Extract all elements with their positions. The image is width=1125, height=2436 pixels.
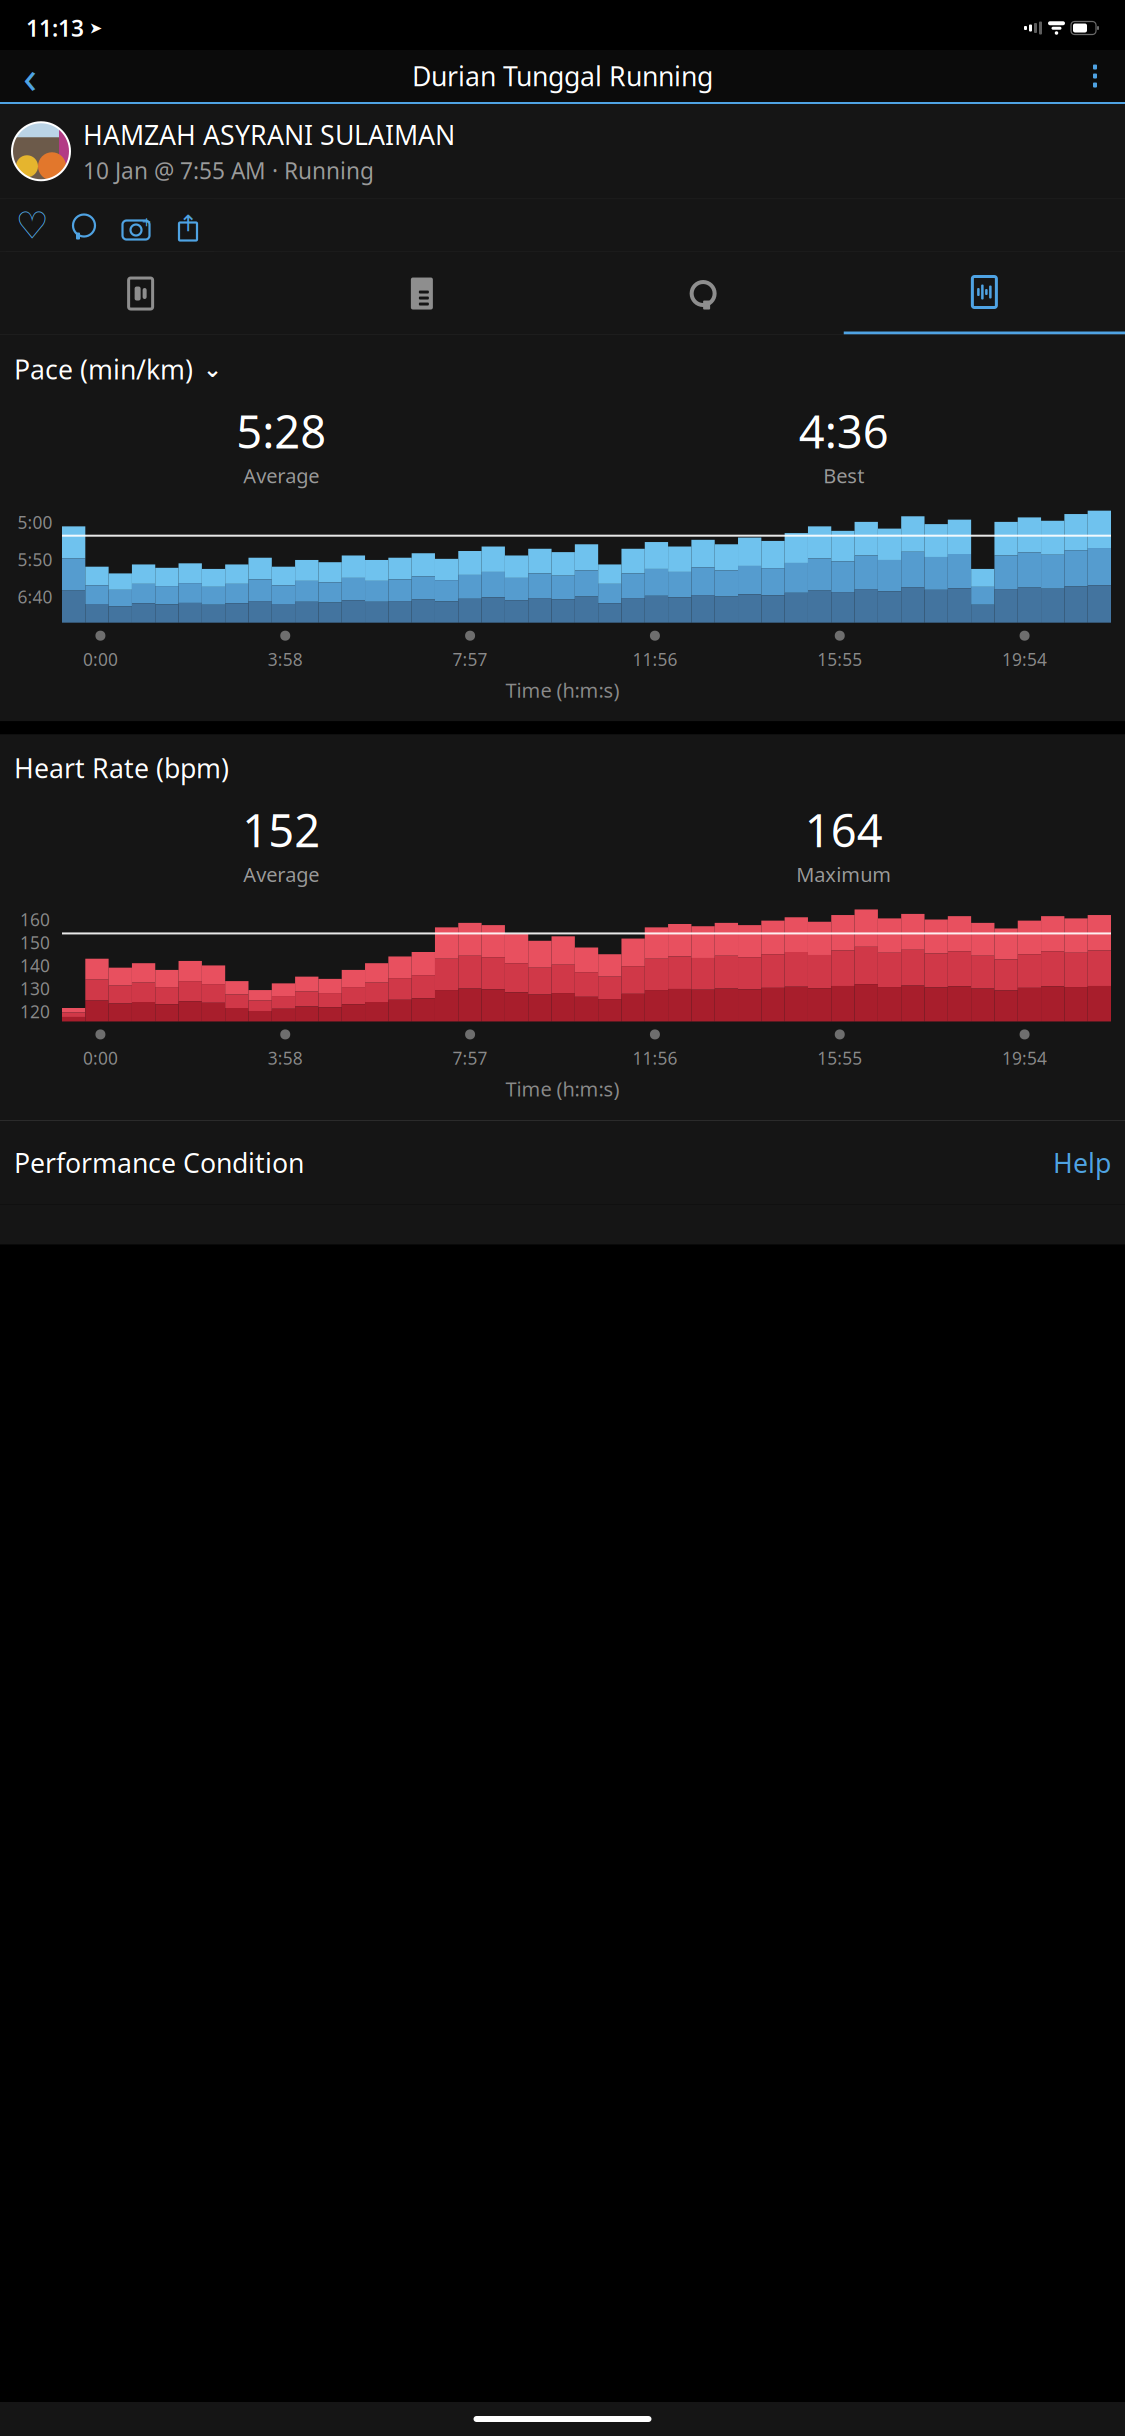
- staticText: 0:00: [83, 1046, 118, 1069]
- staticText: 5:00: [17, 511, 52, 534]
- button[interactable]: Map: [0, 252, 281, 334]
- staticText: Maximum: [796, 861, 891, 887]
- button[interactable]: Pace (min/km): [0, 335, 1125, 387]
- staticText: 150: [20, 931, 50, 954]
- staticText: 15:55: [817, 1046, 862, 1069]
- staticText: 0:00: [83, 648, 118, 671]
- button[interactable]: Back: [4, 52, 56, 100]
- button[interactable]: Charts: [844, 252, 1125, 334]
- staticText: 11:56: [632, 648, 677, 671]
- staticText: 6:40: [17, 585, 52, 608]
- staticText: Average: [243, 462, 319, 489]
- staticText: 152: [242, 800, 320, 860]
- button[interactable]: Add photo: [110, 199, 162, 251]
- button[interactable]: Performance Condition: [0, 1121, 1125, 1204]
- staticText: 140: [20, 954, 50, 977]
- staticText: +: [142, 211, 151, 233]
- staticText: HAMZAH ASYRANI SULAIMAN: [83, 117, 455, 152]
- staticText: 19:54: [1002, 648, 1047, 671]
- staticText: ↑: [178, 210, 197, 236]
- staticText: 5:50: [17, 548, 52, 571]
- staticText: 120: [20, 1000, 50, 1023]
- staticText: 160: [20, 908, 50, 931]
- staticText: ➤: [89, 19, 102, 37]
- staticText: 10 Jan @ 7:55 AM · Running: [83, 155, 374, 185]
- button[interactable]: Share: [162, 199, 214, 251]
- staticText: Durian Tunggal Running: [412, 58, 713, 94]
- staticText: 7:57: [453, 648, 488, 671]
- staticText: Best: [823, 462, 864, 489]
- staticText: Performance Condition: [14, 1145, 304, 1180]
- button[interactable]: More options: [1069, 52, 1121, 100]
- staticText: 5:28: [236, 401, 326, 461]
- staticText: ♡: [15, 204, 48, 247]
- button[interactable]: HAMZAH ASYRANI SULAIMAN: [0, 104, 1125, 198]
- staticText: 7:57: [453, 1046, 488, 1069]
- staticText: ⌄: [203, 356, 222, 382]
- staticText: Time (h:m:s): [505, 677, 619, 703]
- staticText: 15:55: [817, 648, 862, 671]
- staticText: Average: [243, 861, 319, 887]
- staticText: 4:36: [799, 401, 889, 461]
- button[interactable]: Comment: [58, 199, 110, 251]
- button[interactable]: Laps: [562, 252, 844, 334]
- staticText: 164: [805, 800, 883, 860]
- staticText: 11:56: [632, 1046, 677, 1069]
- staticText: 11:13: [26, 13, 84, 43]
- staticText: 3:58: [268, 1046, 303, 1069]
- staticText: 130: [20, 977, 50, 1000]
- staticText: Heart Rate (bpm): [14, 750, 229, 786]
- staticText: Help: [1053, 1145, 1111, 1180]
- button[interactable]: Like: [6, 199, 58, 251]
- staticText: ‹: [23, 46, 37, 106]
- staticText: Time (h:m:s): [505, 1075, 619, 1102]
- staticText: Pace (min/km): [14, 351, 193, 387]
- button[interactable]: Details: [281, 252, 562, 334]
- staticText: 3:58: [268, 648, 303, 671]
- staticText: 19:54: [1002, 1046, 1047, 1069]
